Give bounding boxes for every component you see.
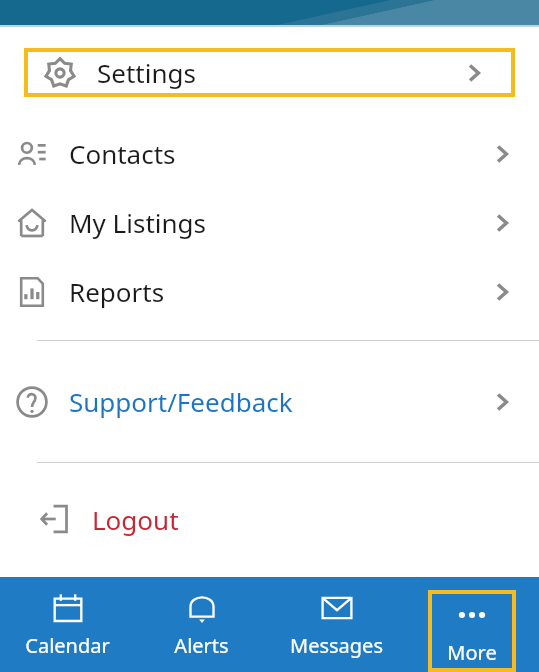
staticText: Support/Feedback — [69, 384, 293, 419]
button[interactable]: My Listings — [0, 188, 539, 257]
button[interactable]: Alerts — [134, 577, 269, 672]
button[interactable]: Settings — [28, 52, 511, 93]
button[interactable]: More — [432, 594, 512, 668]
button[interactable]: Contacts — [0, 119, 539, 188]
staticText: Messages — [290, 632, 383, 659]
button[interactable]: Messages — [269, 577, 404, 672]
button[interactable]: Reports — [0, 257, 539, 326]
staticText: Reports — [69, 274, 165, 309]
staticText: Logout — [92, 502, 179, 537]
button[interactable]: Support/Feedback — [0, 367, 539, 436]
staticText: Calendar — [25, 632, 110, 659]
staticText: My Listings — [69, 205, 206, 240]
staticText: Settings — [97, 55, 196, 90]
button[interactable]: Logout — [0, 489, 539, 549]
staticText: Contacts — [69, 136, 176, 171]
button[interactable]: Calendar — [0, 577, 134, 672]
staticText: Alerts — [174, 632, 229, 659]
staticText: More — [447, 639, 497, 666]
